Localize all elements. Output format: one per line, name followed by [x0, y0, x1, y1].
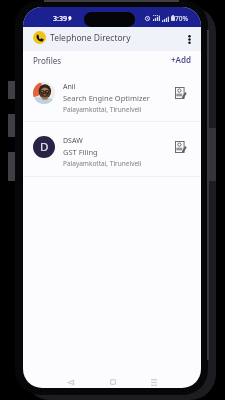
button[interactable]: Recent apps — [146, 374, 162, 388]
button[interactable] — [23, 122, 201, 176]
button[interactable]: More options — [182, 32, 196, 46]
staticText: D — [40, 139, 49, 155]
staticText: 70% — [175, 14, 188, 23]
staticText: Palayamkottai, Tirunelveli — [63, 105, 142, 114]
button[interactable]: Home — [105, 374, 121, 388]
button[interactable]: Back — [63, 374, 79, 388]
staticText: Profiles — [33, 55, 62, 66]
button[interactable]: App icon — [33, 31, 46, 44]
staticText: Anil — [63, 82, 76, 92]
button[interactable] — [23, 68, 201, 122]
staticText: +Add — [171, 54, 191, 65]
staticText: 3:39 — [53, 14, 67, 24]
button[interactable]: Edit profile — [172, 85, 188, 101]
staticText: Telephone Directory — [50, 32, 131, 44]
button[interactable]: Edit profile — [172, 139, 188, 155]
button[interactable]: +Add — [170, 52, 192, 67]
staticText: DSAW — [63, 136, 83, 146]
staticText: GST Filing — [63, 147, 98, 157]
staticText: Search Engine Optimizer — [63, 93, 150, 103]
staticText: Palayamkottai, Tirunelveli — [63, 159, 142, 168]
